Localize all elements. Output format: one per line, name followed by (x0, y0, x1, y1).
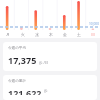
button[interactable]: 木 (44, 30, 58, 38)
button[interactable]: 火 (15, 30, 30, 38)
staticText: 木 (49, 32, 53, 37)
staticText: 日 (91, 32, 95, 37)
button[interactable]: 日 (86, 30, 100, 38)
button[interactable]: 水 (30, 30, 44, 38)
staticText: 歩 (44, 89, 48, 94)
staticText: 17,375 (8, 54, 37, 66)
button[interactable]: 金 (58, 30, 72, 38)
button[interactable]: 月 (0, 30, 15, 38)
staticText: 歩 /日 (39, 60, 49, 65)
staticText: 水 (35, 32, 39, 37)
button[interactable]: 今週の累計 (3, 75, 97, 100)
staticText: 金 (63, 32, 67, 37)
staticText: 今週の平均 (8, 46, 27, 51)
button[interactable]: 土 (72, 30, 86, 38)
button[interactable]: 今週の平均 (3, 42, 97, 71)
staticText: 土 (77, 32, 81, 37)
staticText: 10,000 (89, 22, 99, 26)
staticText: 月 (6, 32, 10, 37)
staticText: 121,622 (8, 87, 42, 95)
staticText: 今週の累計 (8, 79, 27, 84)
staticText: 火 (21, 32, 25, 37)
